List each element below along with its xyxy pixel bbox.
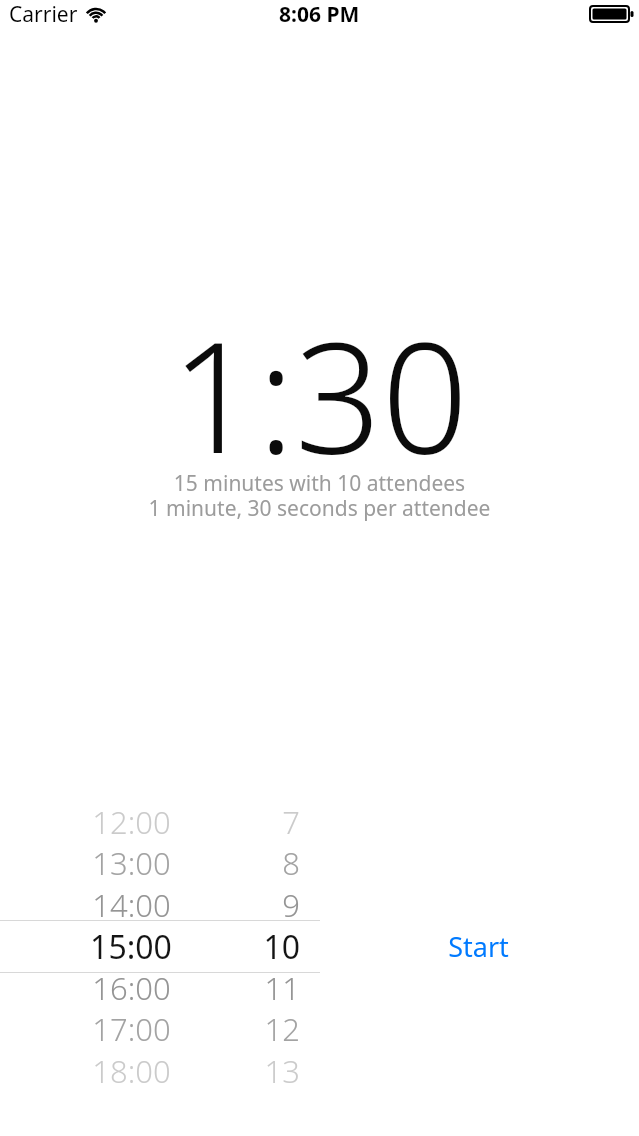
- button[interactable]: 10: [170, 925, 300, 967]
- staticText: 15:00: [90, 925, 172, 967]
- staticText: 12: [264, 1008, 300, 1050]
- staticText: 18:00: [92, 1050, 171, 1092]
- staticText: 8:06 PM: [279, 0, 360, 29]
- button[interactable]: 7: [170, 801, 300, 843]
- button[interactable]: 12:00: [41, 801, 221, 843]
- button[interactable]: 18:00: [41, 1050, 221, 1092]
- staticText: 16:00: [92, 967, 171, 1009]
- staticText: 7: [282, 801, 300, 843]
- button[interactable]: 11: [170, 967, 300, 1009]
- staticText: 13:00: [92, 842, 171, 884]
- button[interactable]: 15:00: [41, 925, 221, 967]
- button[interactable]: 13:00: [41, 842, 221, 884]
- staticText: 14:00: [92, 884, 171, 926]
- staticText: Carrier: [9, 0, 78, 29]
- staticText: 17:00: [92, 1008, 171, 1050]
- button[interactable]: 12: [170, 1008, 300, 1050]
- staticText: 15 minutes with 10 attendees 1 minute, 3…: [0, 469, 639, 522]
- button[interactable]: 9: [170, 884, 300, 926]
- button[interactable]: Start: [398, 920, 558, 972]
- staticText: 12:00: [92, 801, 171, 843]
- staticText: 9: [282, 884, 300, 926]
- button[interactable]: 13: [170, 1050, 300, 1092]
- button[interactable]: 16:00: [41, 967, 221, 1009]
- other: Wi-Fi signal: [86, 7, 106, 23]
- button[interactable]: 14:00: [41, 884, 221, 926]
- button[interactable]: 17:00: [41, 1008, 221, 1050]
- staticText: 10: [263, 925, 300, 967]
- staticText: 11: [264, 967, 300, 1009]
- other: Battery full: [589, 5, 634, 23]
- staticText: 8: [282, 842, 300, 884]
- button[interactable]: 8: [170, 842, 300, 884]
- staticText: 13: [264, 1050, 300, 1092]
- staticText: 1:30: [0, 291, 639, 498]
- staticText: Start: [448, 928, 509, 965]
